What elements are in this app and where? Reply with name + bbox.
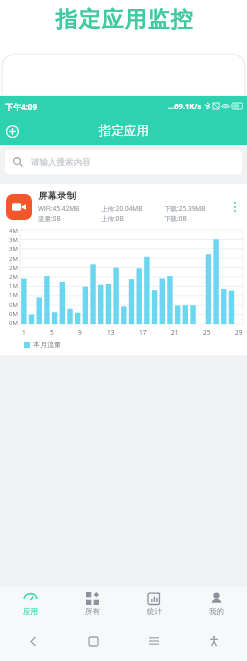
staticText: 5 (50, 328, 54, 337)
staticText: 本月流量 (33, 340, 61, 349)
staticText: 9 (78, 328, 82, 337)
staticText: 所有 (85, 607, 100, 616)
staticText: 4M (9, 227, 18, 235)
staticText: 指定应用 (99, 123, 149, 139)
staticText: 请输入搜索内容 (31, 157, 91, 168)
staticText: 0M (9, 301, 18, 309)
staticText: 流量:0B (38, 214, 61, 223)
staticText: 2M (9, 273, 18, 281)
button[interactable]: 统计 (123, 587, 185, 621)
button[interactable]: More options (227, 199, 243, 215)
button[interactable]: Home (82, 630, 104, 652)
staticText: 1 (22, 328, 26, 337)
staticText: 2M (9, 255, 18, 263)
staticText: WiFi:45.42MB (38, 204, 80, 213)
staticText: 下午4:09 (5, 101, 37, 112)
staticText: 我的 (209, 607, 224, 616)
staticText: 上传:0B (101, 214, 124, 223)
button[interactable]: Recents (143, 630, 165, 652)
button[interactable]: Add (0, 119, 24, 143)
staticText: 0M (9, 319, 18, 327)
staticText: 1M (9, 291, 18, 299)
button[interactable]: 屏幕录制 (0, 184, 247, 227)
button[interactable]: 请输入搜索内容 (5, 150, 242, 174)
staticText: 上传:20.04MB (101, 204, 143, 213)
staticText: 21 (171, 328, 179, 337)
staticText: 3M (9, 236, 18, 244)
button[interactable]: Back (22, 630, 44, 652)
button[interactable]: 应用 (0, 587, 61, 621)
staticText: 应用 (23, 607, 38, 616)
staticText: 25 (203, 328, 211, 337)
staticText: 3M (9, 245, 18, 253)
staticText: 统计 (147, 607, 162, 616)
staticText: 下载:0B (164, 214, 187, 223)
staticText: 29 (235, 328, 243, 337)
button[interactable]: 我的 (185, 587, 247, 621)
staticText: 指定应用监控 (55, 6, 193, 34)
staticText: 下载:25.39MB (164, 204, 206, 213)
staticText: 13 (107, 328, 115, 337)
button[interactable]: 所有 (61, 587, 123, 621)
staticText: 1M (9, 282, 18, 290)
staticText: 0M (9, 310, 18, 318)
button[interactable]: Accessibility (203, 630, 225, 652)
staticText: 屏幕录制 (38, 190, 76, 202)
staticText: 17 (139, 328, 147, 337)
staticText: 2M (9, 264, 18, 272)
staticText: ...69.1K/s (168, 101, 202, 111)
